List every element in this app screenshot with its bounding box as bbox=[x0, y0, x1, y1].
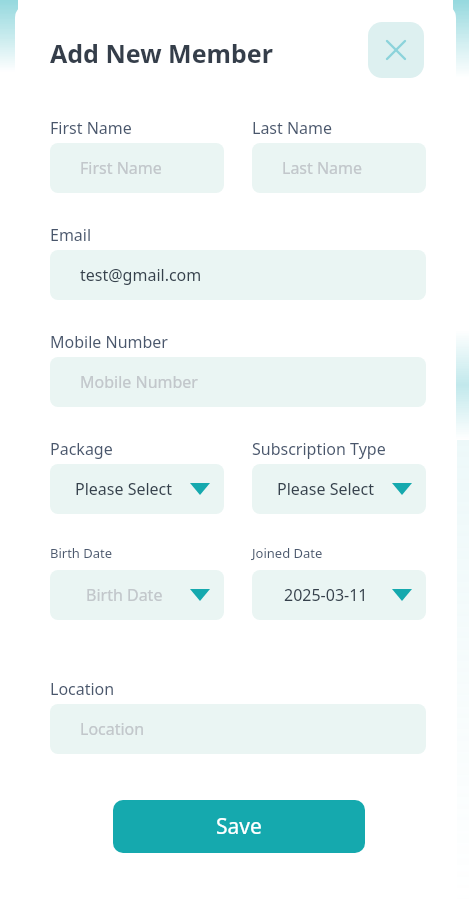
button[interactable]: Please Select bbox=[50, 464, 224, 514]
staticText: Please Select bbox=[277, 478, 375, 500]
staticText: test@gmail.com bbox=[80, 264, 202, 286]
staticText: Last Name bbox=[252, 117, 333, 139]
staticText: Mobile Number bbox=[80, 371, 198, 393]
staticText: First Name bbox=[50, 117, 132, 139]
button[interactable]: test@gmail.com bbox=[50, 250, 426, 300]
staticText: Location bbox=[50, 678, 115, 700]
staticText: Please Select bbox=[75, 478, 173, 500]
button[interactable]: Mobile Number bbox=[50, 357, 426, 407]
staticText: Subscription Type bbox=[252, 438, 386, 460]
staticText: 2025-03-11 bbox=[284, 584, 368, 606]
staticText: Birth Date bbox=[86, 584, 163, 606]
staticText: First Name bbox=[80, 157, 162, 179]
staticText: Birth Date bbox=[50, 544, 113, 562]
staticText: Email bbox=[50, 224, 92, 246]
button[interactable]: Please Select bbox=[252, 464, 426, 514]
staticText: Add New Member bbox=[50, 36, 273, 70]
staticText: Last Name bbox=[282, 157, 363, 179]
staticText: Joined Date bbox=[252, 544, 323, 562]
button[interactable]: Close bbox=[368, 22, 424, 78]
button[interactable]: 2025-03-11 bbox=[252, 570, 426, 620]
button[interactable]: Birth Date bbox=[50, 570, 224, 620]
staticText: Location bbox=[80, 718, 145, 740]
button[interactable]: Location bbox=[50, 704, 426, 754]
button[interactable]: Save bbox=[113, 800, 365, 853]
button[interactable]: First Name bbox=[50, 143, 224, 193]
staticText: Save bbox=[216, 812, 262, 841]
button[interactable]: Last Name bbox=[252, 143, 426, 193]
staticText: Package bbox=[50, 438, 113, 460]
staticText: Mobile Number bbox=[50, 331, 168, 353]
